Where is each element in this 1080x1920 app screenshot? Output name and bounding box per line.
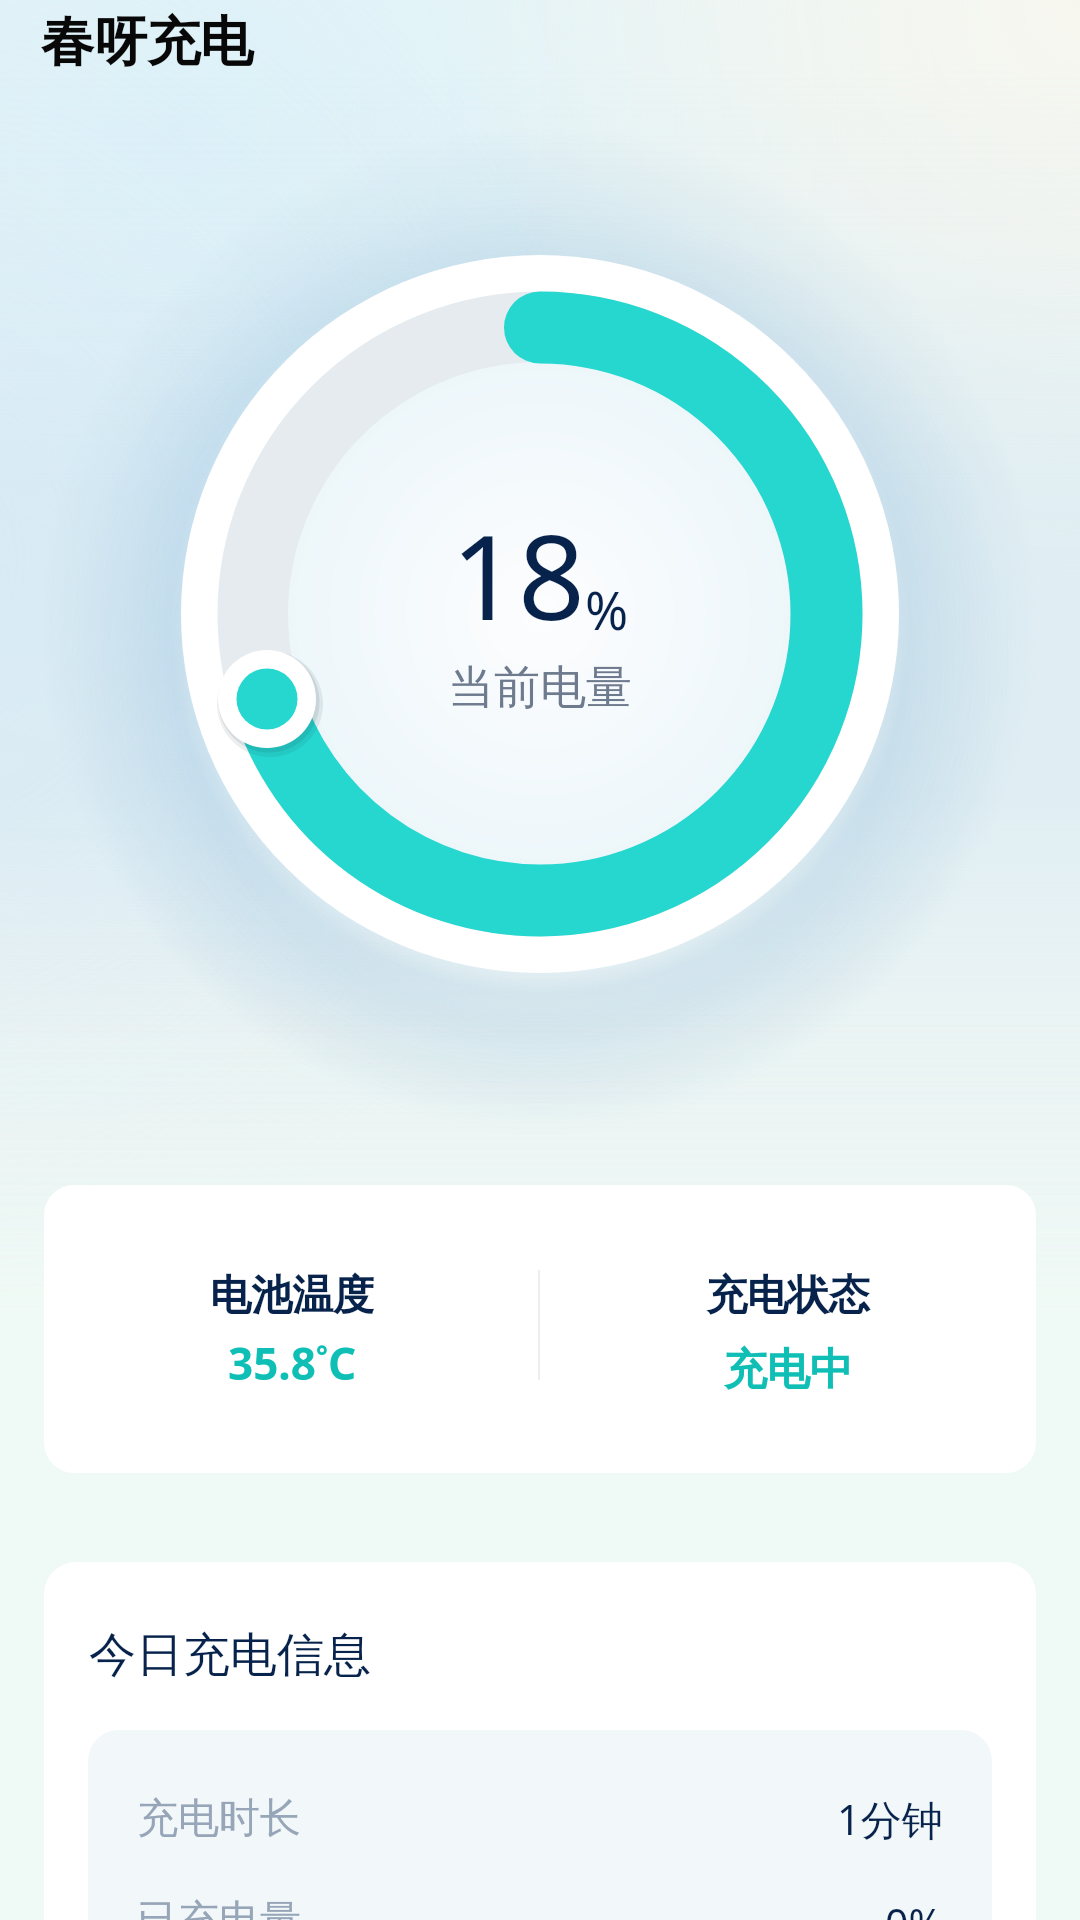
- staticText: 0%: [885, 1895, 943, 1920]
- button[interactable]: 充电时长: [137, 1791, 943, 1847]
- staticText: 35.8: [228, 1333, 316, 1393]
- staticText: 当前电量: [448, 659, 632, 717]
- button[interactable]: 已充电量: [137, 1895, 943, 1920]
- button[interactable]: 当前电量 18%: [181, 255, 899, 973]
- button[interactable]: 今日充电信息: [44, 1562, 1036, 1920]
- staticText: 18: [451, 495, 585, 654]
- staticText: %: [585, 574, 629, 645]
- button[interactable]: 电池温度: [44, 1185, 1036, 1473]
- staticText: 充电中: [724, 1343, 853, 1397]
- staticText: 电池温度: [210, 1270, 374, 1322]
- staticText: 今日充电信息: [89, 1626, 371, 1685]
- staticText: 春呀充电: [41, 9, 253, 76]
- staticText: 已充电量: [137, 1895, 301, 1920]
- staticText: 充电状态: [706, 1270, 870, 1322]
- staticText: °: [316, 1336, 328, 1374]
- staticText: 1分钟: [837, 1791, 943, 1847]
- staticText: 充电时长: [137, 1793, 301, 1845]
- staticText: C: [328, 1333, 357, 1393]
